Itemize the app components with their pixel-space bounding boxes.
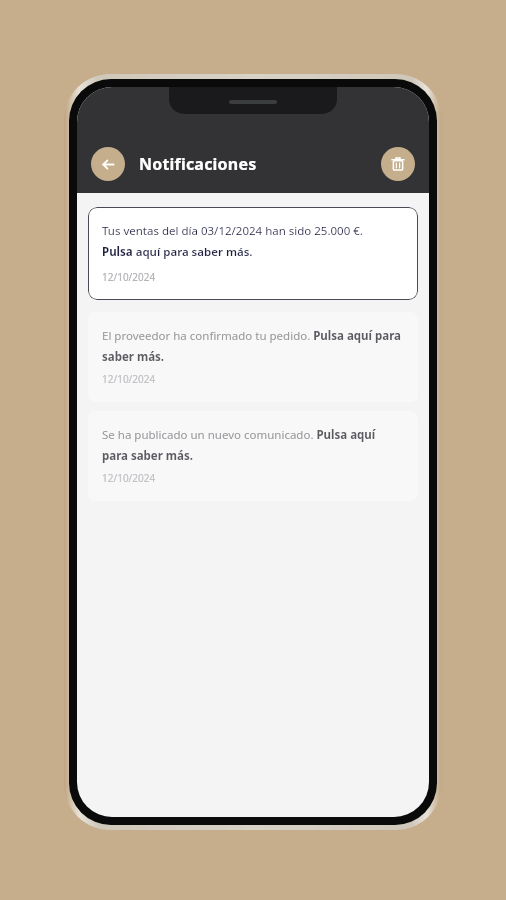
button[interactable]: Delete all notifications: [381, 147, 415, 181]
staticText: Se ha publicado un nuevo comunicado. Pul…: [102, 427, 404, 463]
staticText: Notificaciones: [139, 153, 257, 175]
staticText: 12/10/2024: [102, 471, 156, 485]
staticText: El proveedor ha confirmado tu pedido. Pu…: [102, 328, 404, 364]
staticText: Pulsa aquí para saber más.: [102, 244, 253, 260]
staticText: 12/10/2024: [102, 270, 156, 284]
button[interactable]: Se ha publicado un nuevo comunicado. Pul…: [88, 411, 418, 501]
button[interactable]: El proveedor ha confirmado tu pedido. Pu…: [88, 312, 418, 402]
staticText: 12/10/2024: [102, 372, 156, 386]
button[interactable]: Tus ventas del día 03/12/2024 han sido 2…: [88, 207, 418, 300]
button[interactable]: Back: [91, 147, 125, 181]
staticText: Tus ventas del día 03/12/2024 han sido 2…: [102, 223, 363, 239]
